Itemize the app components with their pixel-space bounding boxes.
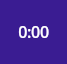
staticText: 0:00 bbox=[18, 21, 49, 43]
button[interactable]: Timer 0:00 bbox=[0, 0, 67, 64]
